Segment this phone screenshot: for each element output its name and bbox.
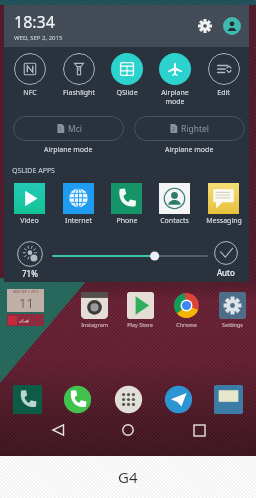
button[interactable]: Phone — [104, 183, 149, 226]
button[interactable]: 1 — [13, 116, 124, 141]
staticText: NFC — [23, 88, 37, 98]
button[interactable]: Auto brightness — [207, 241, 245, 278]
staticText: WED SEP 2 2015 — [13, 289, 39, 294]
button[interactable]: Airplane mode — [152, 53, 197, 106]
staticText: Internet — [65, 216, 92, 226]
staticText: Airplane mode — [161, 88, 189, 106]
button[interactable]: Video — [7, 183, 52, 226]
staticText: QSlide — [116, 88, 138, 98]
button[interactable]: User profile — [223, 17, 241, 35]
staticText: تهران — [19, 318, 30, 323]
button[interactable]: Settings — [214, 292, 250, 328]
button[interactable]: Internet — [56, 183, 101, 226]
staticText: Video — [20, 216, 39, 226]
staticText: Mci — [68, 123, 82, 135]
staticText: Auto — [217, 267, 235, 278]
staticText: WED, SEP 2, 2015 — [14, 34, 63, 42]
button[interactable]: Messaging — [201, 183, 246, 226]
button[interactable]: NFC — [7, 53, 52, 98]
staticText: Instagram — [81, 321, 108, 328]
button[interactable]: QSlide — [104, 53, 149, 98]
button[interactable]: Recents — [186, 417, 212, 443]
staticText: Flashlight — [63, 88, 95, 98]
button[interactable]: Brightness — [15, 241, 44, 279]
staticText: Messaging — [206, 216, 242, 226]
staticText: Rightel — [181, 123, 210, 135]
staticText: 1 — [59, 126, 62, 133]
button[interactable]: Back — [45, 417, 71, 443]
button[interactable]: Chrome — [168, 292, 204, 328]
staticText: Contacts — [160, 216, 189, 226]
button[interactable]: Instagram — [76, 292, 112, 328]
button[interactable]: Apps — [114, 385, 143, 414]
staticText: Settings — [222, 321, 243, 328]
button[interactable]: WhatsApp — [63, 385, 92, 414]
staticText: Airplane mode — [165, 145, 214, 155]
staticText: 18:34 — [14, 11, 55, 33]
button[interactable]: Flashlight — [56, 53, 101, 98]
staticText: Chrome — [176, 321, 197, 328]
button[interactable]: Contacts — [152, 183, 197, 226]
button[interactable]: Play Store — [122, 292, 158, 328]
staticText: Edit — [217, 88, 230, 98]
button[interactable]: Clock widget — [7, 289, 44, 326]
staticText: Play Store — [127, 321, 153, 328]
staticText: 2 — [172, 126, 175, 133]
button[interactable]: Bank — [214, 385, 243, 414]
button[interactable]: Edit — [201, 53, 246, 98]
staticText: 11 — [19, 294, 34, 312]
staticText: G4 — [118, 467, 138, 487]
button[interactable]: Settings — [194, 15, 216, 37]
button[interactable]: 2 — [134, 116, 245, 141]
staticText: Phone — [116, 216, 138, 226]
button[interactable]: Phone — [13, 385, 42, 414]
button[interactable]: Home — [115, 417, 141, 443]
button[interactable]: Telegram — [164, 385, 193, 414]
staticText: Airplane mode — [44, 145, 93, 155]
staticText: 71% — [22, 268, 38, 279]
staticText: QSLIDE APPS — [12, 166, 55, 176]
